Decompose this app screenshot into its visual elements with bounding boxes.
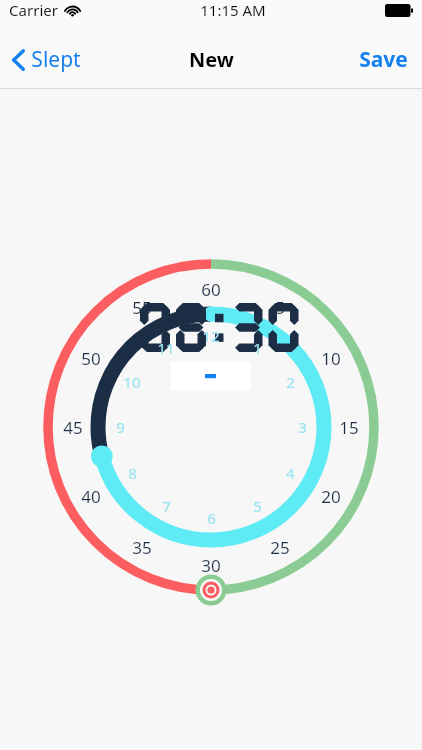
staticText: 11:15 AM (200, 0, 266, 20)
staticText: 35 (132, 536, 152, 559)
staticText: Save (359, 45, 408, 74)
staticText: 10 (321, 347, 341, 370)
staticText: 9 (116, 417, 125, 437)
staticText: 4 (286, 463, 295, 483)
staticText: 2 (286, 372, 295, 392)
staticText: 10 (123, 372, 141, 392)
staticText: 55 (132, 296, 152, 319)
button[interactable]: Slept (0, 39, 93, 80)
staticText: 15 (339, 416, 359, 439)
staticText: 30 (201, 554, 221, 577)
staticText: Slept (31, 45, 81, 74)
staticText: 20 (321, 485, 341, 508)
staticText: 8 (128, 463, 137, 483)
staticText: 60 (201, 278, 221, 301)
staticText: 25 (270, 536, 290, 559)
staticText: New (189, 46, 234, 73)
staticText: 40 (81, 485, 101, 508)
button[interactable]: Save (345, 39, 422, 80)
staticText: 50 (81, 347, 101, 370)
staticText: 3 (298, 417, 307, 437)
staticText: 11 (157, 338, 175, 358)
staticText: 5 (275, 296, 285, 319)
staticText: Carrier (9, 0, 58, 20)
staticText: 5 (253, 496, 262, 516)
staticText: 7 (162, 496, 171, 516)
staticText: 1 (253, 338, 262, 358)
staticText: 45 (63, 416, 83, 439)
staticText: 12 (202, 326, 220, 346)
staticText: 6 (207, 508, 216, 528)
